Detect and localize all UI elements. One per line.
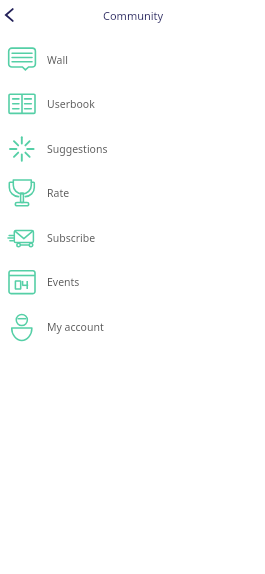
staticText: Userbook — [47, 97, 95, 111]
staticText: Wall — [47, 53, 68, 67]
staticText: My account — [47, 320, 104, 334]
button[interactable]: Back — [0, 2, 26, 28]
staticText: Subscribe — [47, 231, 96, 245]
button[interactable]: Userbook — [0, 81, 265, 126]
button[interactable]: Wall — [0, 37, 265, 82]
button[interactable]: Events — [0, 259, 265, 304]
button[interactable]: Rate — [0, 170, 265, 215]
staticText: Rate — [47, 186, 70, 200]
button[interactable]: My account — [0, 304, 265, 349]
button[interactable]: Suggestions — [0, 126, 265, 171]
staticText: Events — [47, 275, 80, 289]
staticText: Suggestions — [47, 142, 108, 156]
staticText: Community — [103, 8, 164, 23]
button[interactable]: Subscribe — [0, 215, 265, 260]
